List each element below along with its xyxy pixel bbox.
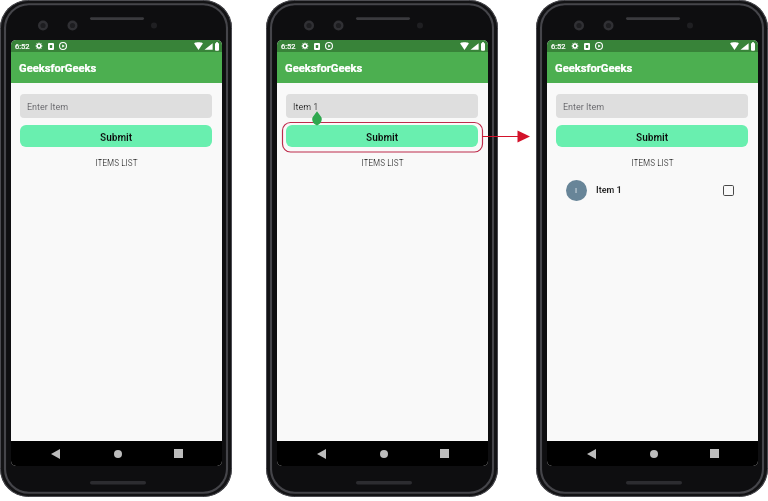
button[interactable]: Recent apps [167, 441, 190, 466]
button[interactable]: Item 1 [286, 94, 478, 118]
staticText: Submit [100, 132, 133, 144]
button[interactable]: Home [106, 441, 129, 466]
button[interactable]: Enter Item [20, 94, 212, 118]
staticText: Submit [366, 132, 399, 144]
staticText: Item 1 [596, 185, 622, 196]
button[interactable]: Select item [720, 182, 736, 198]
button[interactable]: Home [372, 441, 395, 466]
button[interactable]: I [547, 177, 758, 203]
button[interactable]: Back [580, 441, 603, 466]
staticText: ITEMS LIST [11, 158, 222, 168]
button[interactable]: Back [44, 441, 67, 466]
staticText: Enter Item [27, 102, 69, 113]
staticText: Item 1 [293, 102, 319, 113]
staticText: 6:52 [281, 42, 296, 51]
button[interactable]: Enter Item [556, 94, 748, 118]
button[interactable]: Recent apps [433, 441, 456, 466]
staticText: GeeksforGeeks [285, 62, 363, 75]
button[interactable]: Recent apps [703, 441, 726, 466]
staticText: Enter Item [563, 102, 605, 113]
staticText: GeeksforGeeks [555, 62, 633, 75]
staticText: GeeksforGeeks [19, 62, 97, 75]
button[interactable]: Submit [286, 125, 478, 147]
staticText: Submit [636, 132, 669, 144]
staticText: 6:52 [551, 42, 566, 51]
button[interactable]: Submit [556, 125, 748, 147]
button[interactable]: Submit [20, 125, 212, 147]
button[interactable]: Back [310, 441, 333, 466]
staticText: ITEMS LIST [547, 158, 758, 168]
button[interactable]: Home [642, 441, 665, 466]
staticText: 6:52 [15, 42, 30, 51]
staticText: ITEMS LIST [277, 158, 488, 168]
staticText: I [575, 186, 578, 195]
